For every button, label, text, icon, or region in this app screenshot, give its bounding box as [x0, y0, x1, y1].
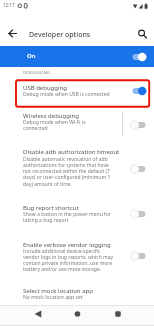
button[interactable]	[0, 237, 154, 277]
staticText: USB debugging	[23, 84, 67, 92]
staticText: not reconnected within the default (7	[23, 168, 110, 175]
staticText: Disable automatic revocation of adb	[23, 156, 108, 163]
staticText: days) or user-configured (minimum 1	[23, 174, 111, 181]
button[interactable]	[70, 307, 85, 321]
button[interactable]	[0, 79, 154, 108]
staticText: Show a button in the power menu for	[23, 211, 111, 218]
staticText: Enable verbose vendor logging	[23, 241, 111, 249]
button[interactable]	[130, 85, 148, 97]
staticText: 12:17	[3, 2, 15, 8]
button[interactable]	[136, 28, 150, 42]
button[interactable]	[130, 51, 148, 63]
button[interactable]	[111, 307, 125, 321]
button[interactable]	[130, 250, 148, 262]
staticText: battery and/or use more storage.	[23, 266, 102, 273]
staticText: Disable adb authorization timeout	[23, 148, 120, 156]
button[interactable]	[130, 208, 148, 220]
staticText: taking a bug report	[23, 217, 69, 224]
staticText: authorizations for systems that have	[23, 162, 109, 169]
button[interactable]	[0, 199, 154, 226]
staticText: connected	[23, 125, 48, 132]
staticText: Include additional device-specific	[23, 248, 101, 255]
button[interactable]: On	[0, 46, 154, 67]
staticText: Developer options	[29, 30, 91, 40]
staticText: contain private information, use more	[23, 260, 113, 267]
button[interactable]	[0, 109, 154, 138]
button[interactable]	[130, 163, 148, 175]
button[interactable]	[130, 119, 148, 131]
staticText: Debug mode when Wi-Fi is	[23, 119, 86, 126]
button[interactable]	[6, 29, 18, 39]
staticText: On	[27, 52, 36, 60]
staticText: Bug report shortcut	[23, 204, 79, 212]
button[interactable]	[0, 283, 154, 305]
staticText: Select mock location app	[23, 287, 93, 295]
button[interactable]	[0, 143, 154, 193]
staticText: day) amount of time.	[23, 181, 72, 188]
button[interactable]	[31, 307, 45, 321]
staticText: vendor logs in bug reports, which may	[23, 254, 114, 261]
staticText: No mock location app set	[23, 294, 83, 301]
staticText: Wireless debugging	[23, 112, 79, 120]
staticText: DEBUGGING	[23, 70, 51, 75]
staticText: Debug mode when USB is connected	[23, 91, 110, 98]
